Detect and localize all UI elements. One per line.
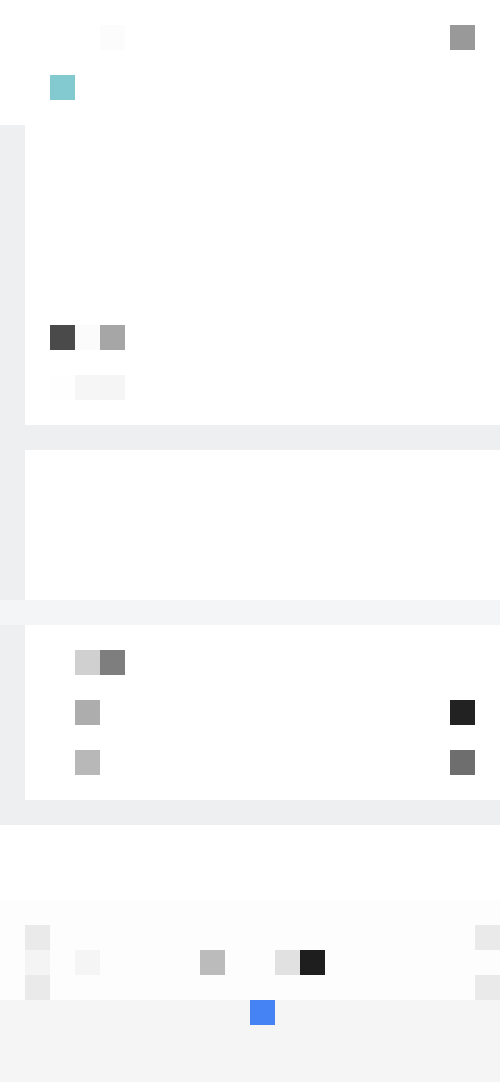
button[interactable] [25,700,500,725]
button[interactable]: Details [75,650,125,675]
button[interactable]: Home [25,925,50,1000]
button[interactable]: Profile [275,950,325,975]
button[interactable]: More [475,925,500,1000]
button[interactable] [25,125,500,425]
button[interactable] [25,750,500,775]
